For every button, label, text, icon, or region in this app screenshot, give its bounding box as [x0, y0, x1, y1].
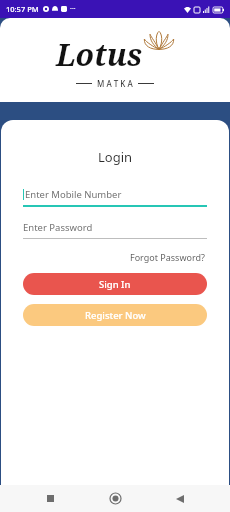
- staticText: Login: [23, 148, 207, 166]
- staticText: Lotus: [56, 34, 143, 75]
- button[interactable]: Register Now: [23, 304, 207, 326]
- staticText: Enter Password: [23, 221, 93, 234]
- staticText: 10:57 PM: [6, 4, 39, 14]
- button[interactable]: Back: [165, 485, 195, 512]
- button[interactable]: Sign In: [23, 273, 207, 295]
- button[interactable]: Forgot Password?: [128, 249, 207, 265]
- button[interactable]: Recents: [35, 485, 65, 512]
- staticText: Enter Mobile Number: [25, 188, 122, 201]
- staticText: Sign In: [99, 278, 131, 291]
- button[interactable]: Enter Password: [23, 221, 207, 239]
- button[interactable]: Enter Mobile Number: [23, 188, 207, 207]
- staticText: Register Now: [85, 309, 146, 322]
- staticText: M A T K A: [97, 78, 133, 89]
- staticText: Forgot Password?: [130, 251, 205, 263]
- staticText: ···: [70, 4, 76, 14]
- button[interactable]: Home: [100, 485, 130, 512]
